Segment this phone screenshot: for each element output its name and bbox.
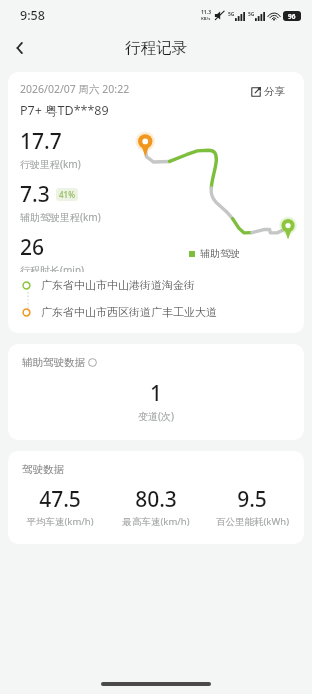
staticText: KB/s <box>201 16 211 22</box>
staticText: 行程时长(min) <box>20 263 85 272</box>
staticText: 平均车速(km/h) <box>26 515 94 528</box>
staticText: P7+ 粤TD***89 <box>20 102 109 119</box>
button[interactable]: 辅助驾驶数据 <box>22 356 97 369</box>
staticText: 5G <box>248 11 255 18</box>
staticText: 最高车速(km/h) <box>122 515 190 528</box>
staticText: 11.3 <box>201 9 211 16</box>
staticText: 2026/02/07 周六 20:22 <box>20 82 130 96</box>
staticText: 1 <box>150 379 163 408</box>
staticText: 7.3 <box>20 180 50 209</box>
staticText: 辅助驾驶 <box>200 247 240 260</box>
staticText: 辅助驾驶数据 <box>22 356 85 369</box>
staticText: 41% <box>59 189 75 200</box>
staticText: 26 <box>20 233 45 262</box>
button[interactable]: 分享 <box>242 82 294 101</box>
staticText: 分享 <box>264 85 285 98</box>
button[interactable]: 返回 <box>0 30 40 66</box>
staticText: 80.3 <box>135 485 177 514</box>
staticText: 17.7 <box>20 127 62 156</box>
staticText: 96 <box>288 12 296 21</box>
staticText: 行程记录 <box>125 38 187 58</box>
staticText: 变道(次) <box>138 409 174 423</box>
staticText: 行驶里程(km) <box>20 157 81 171</box>
staticText: 驾驶数据 <box>22 463 64 476</box>
staticText: 广东省中山市西区街道广丰工业大道 <box>41 305 217 319</box>
staticText: 47.5 <box>39 485 81 514</box>
staticText: 广东省中山市中山港街道淘金街 <box>41 278 195 292</box>
staticText: 5G <box>228 11 235 18</box>
staticText: 9.5 <box>237 485 267 514</box>
staticText: 百公里能耗(kWh) <box>216 515 289 528</box>
staticText: 辅助驾驶里程(km) <box>20 210 101 224</box>
staticText: 9:58 <box>20 7 45 24</box>
